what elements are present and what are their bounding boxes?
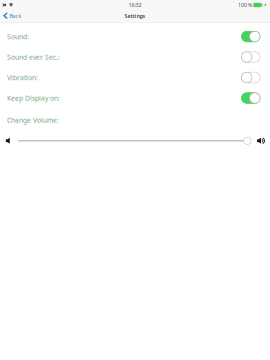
staticText: Sound ever Sec.: xyxy=(7,53,60,61)
staticText: Keep Display on: xyxy=(7,94,60,102)
staticText: Settings xyxy=(124,12,145,20)
staticText: Change Volume: xyxy=(7,116,59,124)
button[interactable]: Minimum volume xyxy=(4,136,12,146)
button[interactable]: Sound: xyxy=(239,27,262,46)
button[interactable]: Sound ever Sec.: xyxy=(239,47,262,67)
staticText: 100 % xyxy=(238,1,252,9)
button[interactable]: Back xyxy=(0,10,26,22)
button[interactable]: Maximum volume xyxy=(257,136,266,146)
staticText: Back xyxy=(9,12,21,20)
staticText: Sound: xyxy=(7,32,29,41)
button[interactable]: Vibration: xyxy=(239,68,262,87)
staticText: 16:32 xyxy=(128,1,141,9)
button[interactable]: Keep Display on: xyxy=(239,88,262,108)
staticText: Vibration: xyxy=(7,73,38,82)
